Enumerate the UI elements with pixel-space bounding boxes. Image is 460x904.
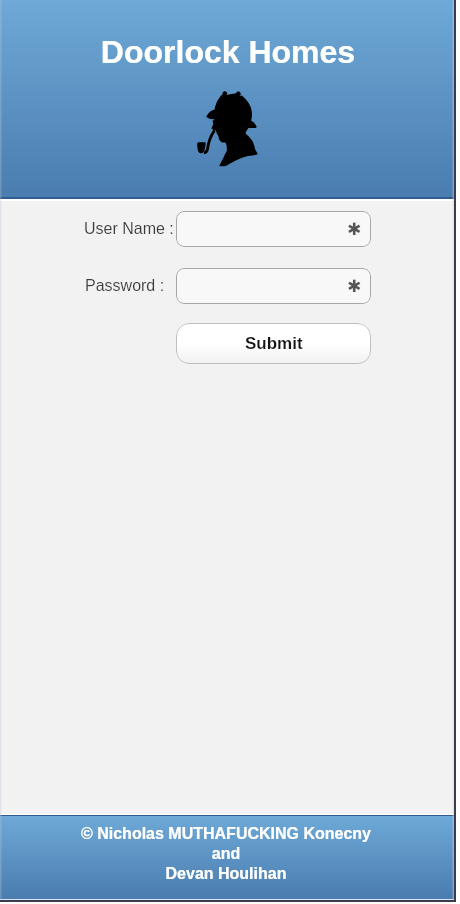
button[interactable]: ✱ <box>176 268 371 304</box>
staticText: © Nicholas MUTHAFUCKING Konecny and Deva… <box>0 825 453 882</box>
staticText: ✱ <box>347 276 362 296</box>
staticText: User Name : <box>84 220 174 238</box>
staticText: Password : <box>85 277 165 295</box>
other: Sherlock Holmes logo <box>193 88 263 172</box>
button[interactable]: Submit <box>176 323 371 364</box>
staticText: ✱ <box>347 219 362 239</box>
staticText: Doorlock Homes <box>1 34 455 70</box>
staticText: Submit <box>245 334 303 353</box>
button[interactable]: ✱ <box>176 211 371 247</box>
